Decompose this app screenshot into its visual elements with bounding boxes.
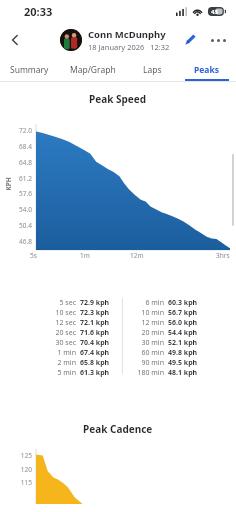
staticText: 67.4 kph	[80, 348, 122, 358]
staticText: 5 sec	[44, 298, 76, 308]
staticText: 72.3 kph	[80, 308, 122, 318]
staticText: 30 sec	[44, 338, 76, 348]
staticText: 10 sec	[44, 308, 76, 318]
staticText: 120	[14, 465, 32, 474]
staticText: 61.3 kph	[80, 368, 122, 378]
staticText: Conn McDunphy	[88, 28, 166, 41]
staticText: 48.1 kph	[168, 368, 210, 378]
staticText: 12m	[130, 251, 144, 260]
staticText: 72.1 kph	[80, 318, 122, 328]
staticText: 6 min	[131, 298, 164, 308]
staticText: 20:33	[24, 4, 53, 19]
button[interactable]: Map/Graph	[59, 58, 127, 82]
staticText: 60 min	[131, 348, 164, 358]
staticText: 180 min	[131, 368, 164, 378]
staticText: 46.8	[14, 237, 32, 246]
staticText: Peak Cadence	[83, 422, 153, 436]
staticText: 20 min	[131, 328, 164, 338]
staticText: 56.0 kph	[168, 318, 210, 328]
staticText: 56.7 kph	[168, 308, 210, 318]
staticText: 20 sec	[44, 328, 76, 338]
staticText: 12 sec	[44, 318, 76, 328]
staticText: 64.8	[14, 158, 32, 167]
staticText: 43	[211, 8, 218, 16]
staticText: 1m	[80, 251, 90, 260]
staticText: Peak Speed	[89, 92, 147, 106]
button[interactable]: Edit	[176, 26, 204, 54]
staticText: 57.6	[14, 189, 32, 198]
staticText: 65.8 kph	[80, 358, 122, 368]
staticText: 52.1 kph	[168, 338, 210, 348]
staticText: Map/Graph	[70, 64, 116, 76]
staticText: 1 min	[44, 348, 76, 358]
staticText: 5 min	[44, 368, 76, 378]
staticText: 18 January 2026 12:32	[88, 42, 170, 52]
staticText: 12 min	[131, 318, 164, 328]
staticText: 3hrs	[216, 251, 230, 260]
button[interactable]: Back	[0, 25, 30, 55]
staticText: 90 min	[131, 358, 164, 368]
staticText: 60.3 kph	[168, 298, 210, 308]
button[interactable]: More options	[204, 26, 232, 54]
button[interactable]: Peaks	[177, 58, 236, 82]
staticText: 61.2	[14, 174, 32, 183]
staticText: KPH	[3, 176, 12, 190]
staticText: 54.4 kph	[168, 328, 210, 338]
staticText: 10 min	[131, 308, 164, 318]
staticText: 5s	[30, 251, 37, 260]
staticText: 2 min	[44, 358, 76, 368]
button[interactable]: Summary	[0, 58, 59, 82]
staticText: Summary	[10, 64, 49, 76]
staticText: 68.4	[14, 142, 32, 151]
staticText: 50.4	[14, 221, 32, 230]
staticText: 125	[14, 451, 32, 460]
staticText: 71.6 kph	[80, 328, 122, 338]
staticText: 30 min	[131, 338, 164, 348]
button[interactable]: Laps	[127, 58, 177, 82]
staticText: 72.0	[14, 126, 32, 135]
staticText: 70.4 kph	[80, 338, 122, 348]
staticText: 49.5 kph	[168, 358, 210, 368]
staticText: Laps	[143, 64, 162, 76]
staticText: 72.9 kph	[80, 298, 122, 308]
staticText: Peaks	[194, 64, 219, 76]
staticText: 49.8 kph	[168, 348, 210, 358]
staticText: 115	[14, 478, 32, 487]
staticText: 54.0	[14, 205, 32, 214]
